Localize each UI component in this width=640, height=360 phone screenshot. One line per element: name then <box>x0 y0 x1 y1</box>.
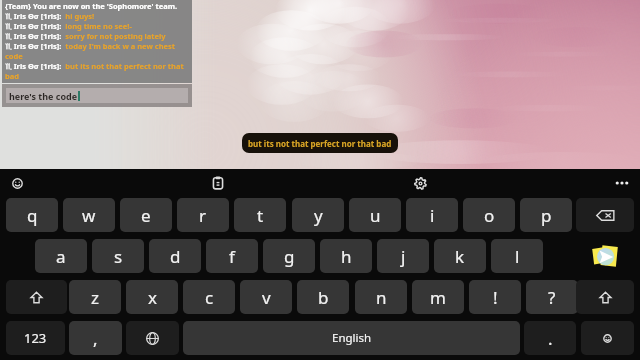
button[interactable]: Emoji <box>1 169 33 197</box>
button[interactable]: 123 <box>6 321 65 355</box>
staticText: n <box>376 286 387 309</box>
staticText: ♏ Iris Θσ [1ris]: sorry for not posting … <box>5 31 166 41</box>
staticText: r <box>199 204 207 227</box>
button[interactable]: u <box>349 198 401 232</box>
staticText: ♏ Iris Θσ [1ris]: but its not that perfe… <box>5 61 192 81</box>
staticText: but its not that perfect nor that bad <box>248 138 392 149</box>
staticText: x <box>148 286 157 309</box>
button[interactable]: e <box>120 198 172 232</box>
button[interactable]: n <box>355 280 407 314</box>
button[interactable]: r <box>177 198 229 232</box>
staticText: o <box>484 204 495 227</box>
button[interactable]: here's the code <box>6 88 188 103</box>
staticText: . <box>548 327 553 350</box>
staticText: q <box>27 204 38 227</box>
button[interactable]: Change language <box>126 321 179 355</box>
staticText: e <box>141 204 151 227</box>
staticText: ! <box>493 286 498 309</box>
staticText: ? <box>548 286 556 309</box>
staticText: here's the code <box>9 90 78 102</box>
button[interactable]: Settings <box>404 169 436 197</box>
button[interactable]: f <box>206 239 258 273</box>
button[interactable]: y <box>292 198 344 232</box>
staticText: i <box>430 204 435 227</box>
staticText: l <box>515 245 520 268</box>
button[interactable]: s <box>92 239 144 273</box>
staticText: c <box>205 286 214 309</box>
staticText: b <box>318 286 329 309</box>
button[interactable]: Shift <box>6 280 67 314</box>
button[interactable]: m <box>412 280 464 314</box>
button[interactable]: l <box>491 239 543 273</box>
button[interactable]: k <box>434 239 486 273</box>
button[interactable]: ? <box>526 280 578 314</box>
staticText: u <box>370 204 381 227</box>
button[interactable]: x <box>126 280 178 314</box>
staticText: English <box>332 330 372 346</box>
button[interactable]: Clipboard <box>202 169 234 197</box>
button[interactable]: j <box>377 239 429 273</box>
staticText: ♏ Iris Θσ [1ris]: today I'm back w a new… <box>5 41 192 61</box>
button[interactable]: v <box>240 280 292 314</box>
button[interactable]: Shift <box>576 280 634 314</box>
button[interactable]: c <box>183 280 235 314</box>
staticText: j <box>401 245 406 268</box>
staticText: f <box>229 245 235 268</box>
staticText: a <box>56 245 66 268</box>
button[interactable]: Send <box>576 239 634 273</box>
staticText: g <box>284 245 295 268</box>
button[interactable]: p <box>520 198 572 232</box>
staticText: {Team} You are now on the 'Sophomore' te… <box>5 1 178 11</box>
button[interactable]: Backspace <box>576 198 634 232</box>
staticText: ♏ Iris Θσ [1ris]: long time no see!- <box>5 21 132 31</box>
button[interactable]: , <box>69 321 122 355</box>
button[interactable]: ! <box>469 280 521 314</box>
staticText: 123 <box>24 329 47 347</box>
staticText: w <box>82 204 96 227</box>
button[interactable]: . <box>524 321 576 355</box>
button[interactable]: h <box>320 239 372 273</box>
button[interactable]: English <box>183 321 520 355</box>
staticText: h <box>341 245 352 268</box>
staticText: k <box>455 245 465 268</box>
staticText: p <box>541 204 552 227</box>
staticText: z <box>91 286 99 309</box>
button[interactable]: Emoji <box>581 321 634 355</box>
button[interactable]: g <box>263 239 315 273</box>
staticText: s <box>114 245 123 268</box>
button[interactable]: a <box>35 239 87 273</box>
button[interactable]: b <box>297 280 349 314</box>
staticText: t <box>257 204 264 227</box>
button[interactable]: d <box>149 239 201 273</box>
staticText: m <box>430 286 446 309</box>
staticText: , <box>93 327 98 350</box>
staticText: d <box>170 245 181 268</box>
button[interactable]: w <box>63 198 115 232</box>
button[interactable]: i <box>406 198 458 232</box>
staticText: y <box>314 204 323 227</box>
staticText: ♏ Iris Θσ [1ris]: hi guys! <box>5 11 95 21</box>
button[interactable]: q <box>6 198 58 232</box>
button[interactable]: More options <box>606 169 638 197</box>
button[interactable]: z <box>69 280 121 314</box>
staticText: v <box>262 286 271 309</box>
button[interactable]: t <box>234 198 286 232</box>
button[interactable]: o <box>463 198 515 232</box>
